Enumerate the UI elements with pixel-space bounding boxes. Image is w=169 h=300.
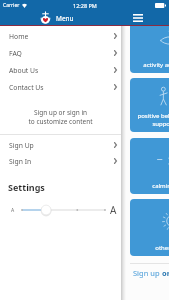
button[interactable]: FAQ [0,45,121,61]
button[interactable]: Sign In [0,153,121,169]
staticText: positive behaviour support [137,112,169,128]
staticText: activity advice [143,61,169,69]
staticText: Sign Up [9,141,34,150]
button[interactable]: other [130,199,169,256]
staticText: A [11,207,15,214]
button[interactable]: calming [130,138,169,194]
staticText: Menu [56,14,74,23]
staticText: or [162,268,169,278]
staticText: Carrier [3,2,20,9]
staticText: Sign up or sign in to customize content [28,108,93,126]
button[interactable]: About Us [0,62,121,78]
staticText: A [110,203,117,217]
button[interactable] [22,204,105,216]
staticText: FAQ [9,49,22,58]
staticText: Sign In [9,157,32,166]
staticText: other [155,244,169,252]
staticText: 12:28 PM [73,2,97,9]
staticText: Sign up [133,268,162,278]
staticText: Home [9,32,29,41]
button[interactable]: positive behaviour support [130,78,169,132]
staticText: Settings [8,181,45,193]
staticText: About Us [9,66,39,75]
staticText: Contact Us [9,83,44,92]
button[interactable]: activity advice [130,20,169,73]
staticText: calming [152,182,169,190]
button[interactable]: Home [0,28,121,44]
button[interactable]: Contact Us [0,79,121,95]
button[interactable]: Sign Up [0,137,121,153]
button[interactable]: Open navigation menu [128,11,148,25]
